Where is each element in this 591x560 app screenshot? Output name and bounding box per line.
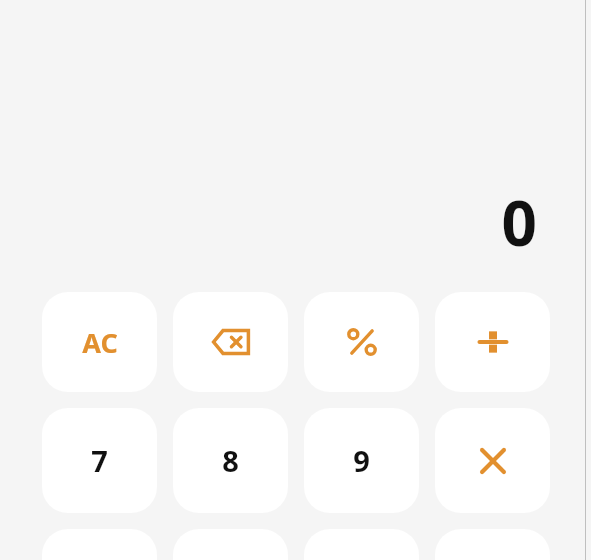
staticText: AC bbox=[82, 324, 118, 361]
staticText: 8 bbox=[222, 441, 239, 480]
button[interactable]: 8 bbox=[173, 408, 288, 513]
button[interactable]: Multiply bbox=[435, 408, 550, 513]
button[interactable]: Backspace bbox=[173, 292, 288, 392]
button[interactable]: AC bbox=[42, 292, 157, 392]
button[interactable]: 7 bbox=[42, 408, 157, 513]
button[interactable]: Divide bbox=[435, 292, 550, 392]
staticText: 9 bbox=[353, 441, 370, 480]
staticText: 0 bbox=[501, 180, 537, 264]
button[interactable]: 9 bbox=[304, 408, 419, 513]
button[interactable]: Percent bbox=[304, 292, 419, 392]
staticText: 7 bbox=[91, 441, 108, 480]
